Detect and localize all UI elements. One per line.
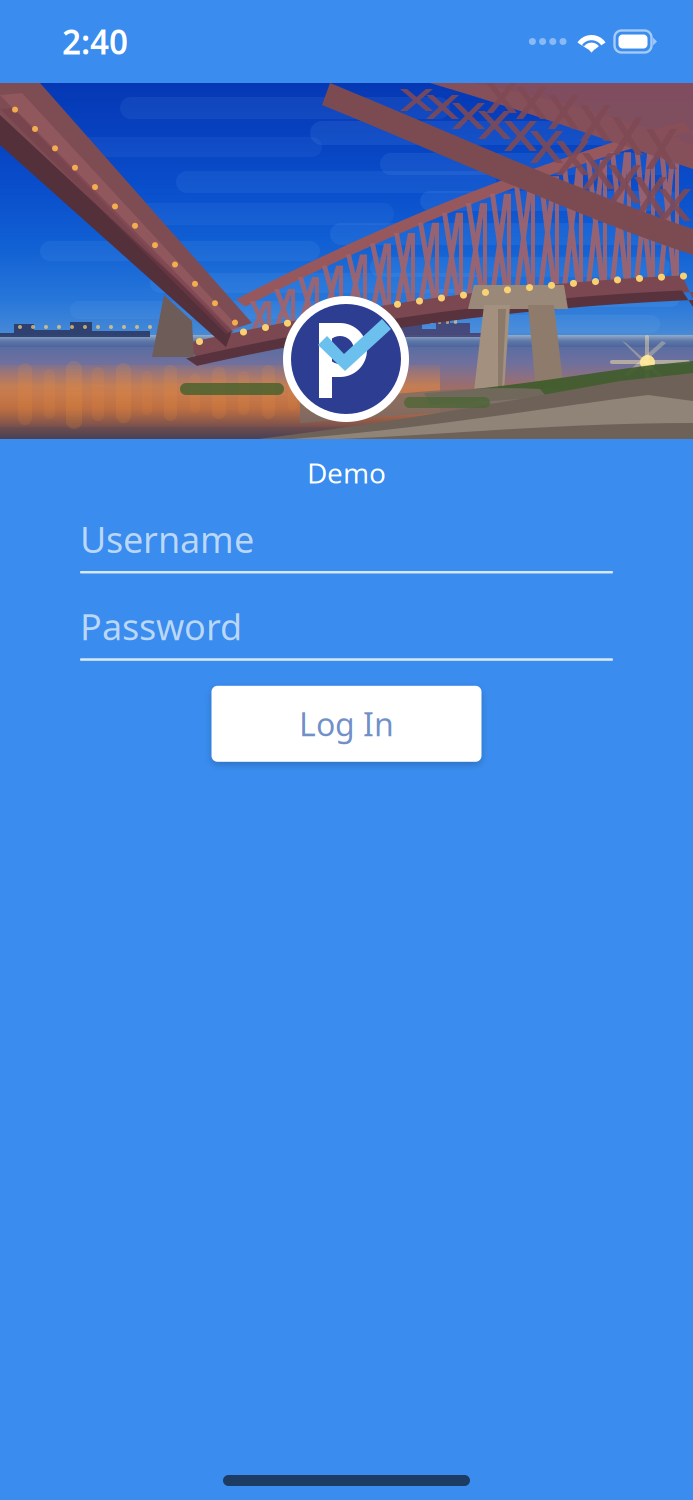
staticText: Log In <box>299 702 394 745</box>
staticText: 2:40 <box>62 19 128 64</box>
staticText: Username <box>80 515 254 563</box>
staticText: Password <box>80 602 242 650</box>
staticText: Demo <box>307 454 386 491</box>
button[interactable]: Log In <box>211 686 481 762</box>
